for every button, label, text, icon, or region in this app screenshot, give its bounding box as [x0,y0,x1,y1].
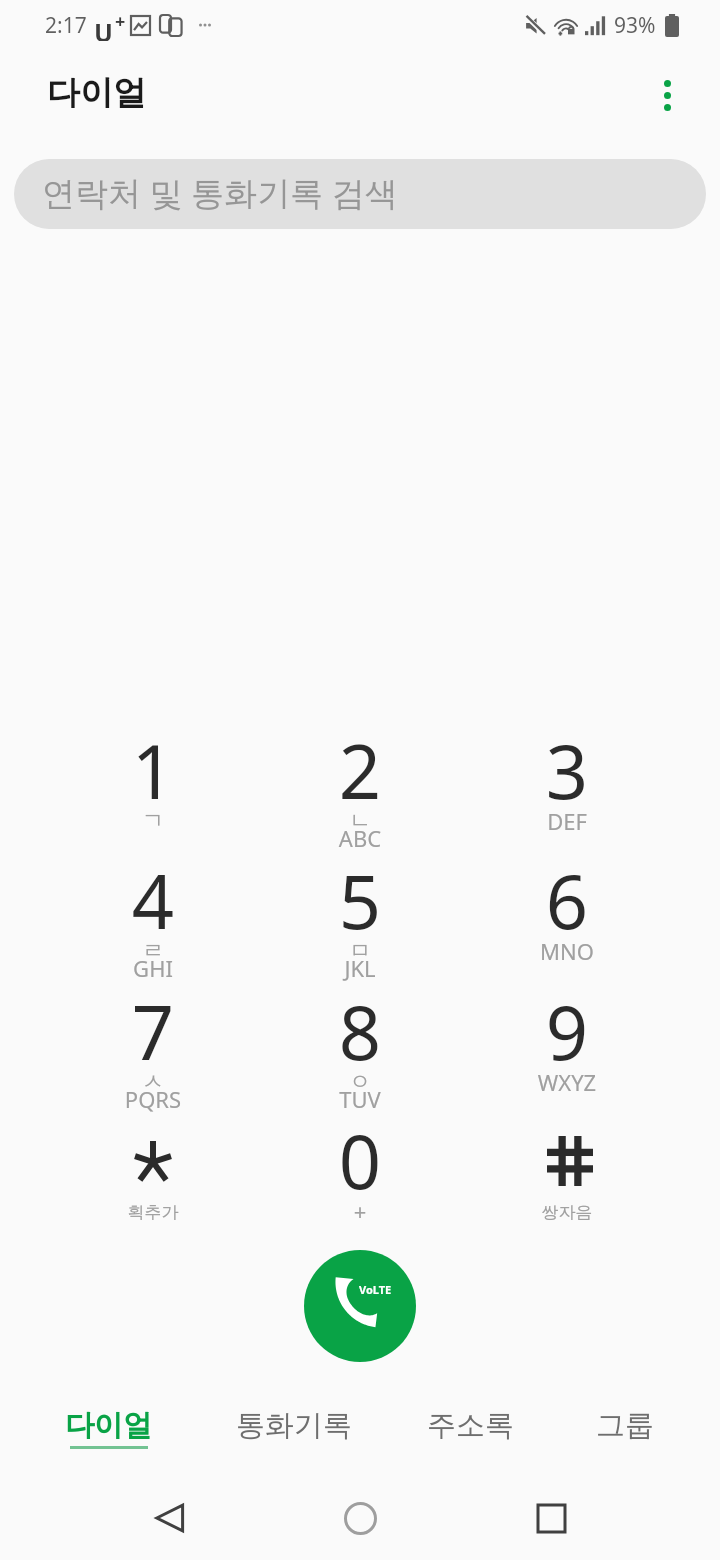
staticText: PQRS [53,1084,253,1114]
staticText: 0 [260,1110,460,1211]
staticText: 연락처 및 통화기록 검색 [42,170,398,215]
button[interactable]: Home [320,1478,400,1558]
staticText: 4 [53,850,253,951]
staticText: + [260,1196,460,1226]
staticText: WXYZ [467,1067,667,1097]
staticText: 다이얼 [65,1407,152,1444]
staticText: 9 [467,981,667,1082]
button[interactable]: 9 [467,977,667,1107]
staticText: VoLTE [359,1282,392,1297]
staticText: 1 [53,720,253,821]
button[interactable]: Pound [467,1106,667,1236]
button[interactable]: 3 [467,716,667,846]
staticText: 쌍자음 [467,1202,667,1223]
staticText: ㄹ [53,937,253,965]
staticText: JKL [260,953,460,983]
staticText: TUV [260,1084,460,1114]
button[interactable]: Recents [511,1478,591,1558]
button[interactable]: 8 [260,977,460,1107]
staticText: ㄴ [260,807,460,835]
button[interactable]: 연락처 및 통화기록 검색 [14,159,706,229]
button[interactable]: 2 [260,716,460,846]
staticText: ㅅ [53,1068,253,1096]
staticText: 3 [467,720,667,821]
staticText: 획추가 [53,1202,253,1223]
staticText: U [94,15,113,41]
staticText: 2 [260,720,460,821]
staticText: MNO [467,936,667,966]
staticText: 2:17 [45,11,87,40]
button[interactable]: More options [639,67,695,123]
staticText: ㅇ [260,1068,460,1096]
staticText: ABC [260,823,460,853]
button[interactable]: Call [304,1250,416,1362]
staticText: + [115,9,126,34]
staticText: 7 [53,981,253,1082]
button[interactable]: 그룹 [537,1391,712,1463]
button[interactable]: Star [53,1106,253,1236]
staticText: ㄱ [53,807,253,835]
staticText: 통화기록 [236,1407,352,1444]
staticText: 그룹 [596,1407,654,1444]
button[interactable]: 7 [53,977,253,1107]
button[interactable]: 4 [53,846,253,976]
button[interactable]: 6 [467,846,667,976]
staticText: 8 [260,981,460,1082]
staticText: ㅁ [260,937,460,965]
button[interactable]: 1 [53,716,253,846]
button[interactable]: Back [130,1478,210,1558]
staticText: 6 [467,850,667,951]
staticText: 93% [614,11,656,40]
staticText: DEF [467,806,667,836]
button[interactable]: 5 [260,846,460,976]
staticText: GHI [53,953,253,983]
button[interactable]: 통화기록 [206,1391,381,1463]
staticText: 5 [260,850,460,951]
button[interactable]: 0 [260,1106,460,1236]
staticText: 다이얼 [47,72,146,114]
staticText: 주소록 [427,1407,514,1444]
button[interactable]: 다이얼 [21,1391,196,1463]
button[interactable]: 주소록 [383,1391,558,1463]
